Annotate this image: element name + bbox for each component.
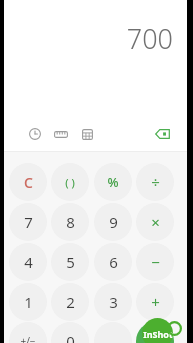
button[interactable]: +/− — [9, 322, 47, 343]
staticText: C — [24, 173, 33, 192]
staticText: ÷ — [151, 172, 160, 192]
button[interactable]: 7 — [9, 203, 47, 241]
button[interactable]: + — [136, 283, 174, 321]
button[interactable]: ( ) — [51, 163, 89, 201]
staticText: 1 — [24, 292, 33, 312]
staticText: % — [107, 173, 119, 191]
staticText: +/− — [20, 334, 36, 343]
staticText: × — [151, 212, 160, 232]
button[interactable]: 2 — [51, 283, 89, 321]
button[interactable]: C — [9, 163, 47, 201]
staticText: ( ) — [65, 175, 75, 190]
button[interactable]: History — [25, 124, 45, 144]
button[interactable]: 8 — [51, 203, 89, 241]
button[interactable]: 6 — [94, 243, 132, 281]
staticText: 700 — [126, 20, 173, 56]
staticText: + — [151, 292, 160, 312]
button[interactable]: ÷ — [136, 163, 174, 201]
button[interactable]: − — [136, 243, 174, 281]
button[interactable]: Scientific calculator — [77, 124, 97, 144]
button[interactable]: × — [136, 203, 174, 241]
button[interactable]: 5 — [51, 243, 89, 281]
button[interactable]: 9 — [94, 203, 132, 241]
button[interactable]: = — [136, 322, 174, 343]
staticText: 9 — [109, 212, 118, 232]
staticText: 7 — [24, 212, 33, 232]
staticText: = — [151, 331, 160, 343]
staticText: 8 — [66, 212, 75, 232]
button[interactable]: 1 — [9, 283, 47, 321]
staticText: 3 — [109, 292, 118, 312]
button[interactable]: 4 — [9, 243, 47, 281]
staticText: 5 — [66, 252, 75, 272]
button[interactable]: Backspace — [152, 124, 172, 144]
staticText: 0 — [66, 331, 75, 343]
staticText: 2 — [66, 292, 75, 312]
staticText: InShot — [143, 328, 173, 340]
button[interactable]: % — [94, 163, 132, 201]
button[interactable]: Unit converter — [51, 124, 71, 144]
button[interactable]: 0 — [51, 322, 89, 343]
staticText: − — [151, 252, 160, 272]
staticText: 6 — [109, 252, 118, 272]
staticText: 4 — [24, 252, 33, 272]
button[interactable]: 3 — [94, 283, 132, 321]
